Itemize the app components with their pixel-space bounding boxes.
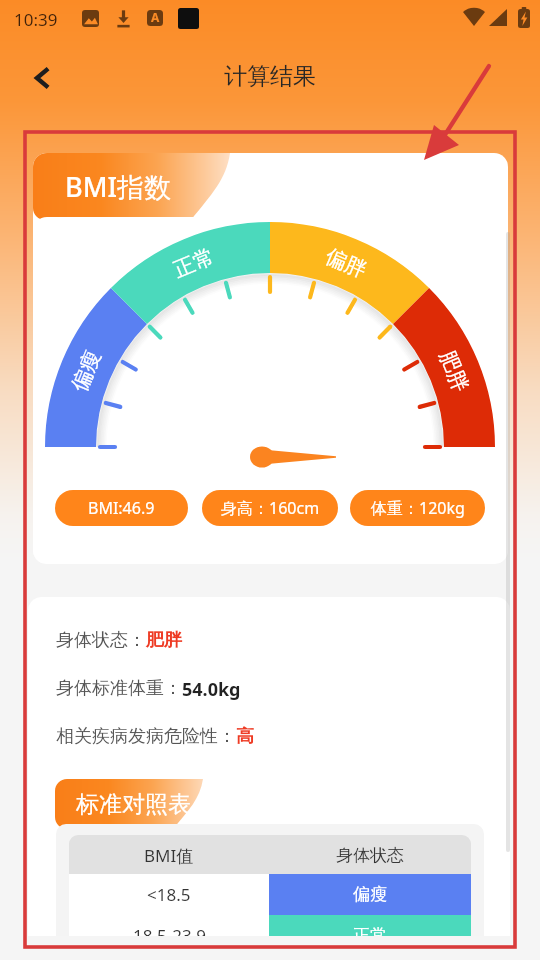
staticText: 高 xyxy=(236,725,254,748)
staticText: 相关疾病发病危险性： xyxy=(56,725,236,748)
button[interactable]: 身高：160cm xyxy=(202,490,338,526)
staticText: BMI:46.9 xyxy=(88,497,155,519)
staticText: 偏瘦 xyxy=(66,347,106,395)
staticText: 肥胖 xyxy=(434,347,474,395)
staticText: <18.5 xyxy=(147,883,191,906)
staticText: 身体状态： xyxy=(56,629,146,652)
staticText: BMI指数 xyxy=(65,168,172,205)
staticText: BMI值 xyxy=(144,844,194,867)
staticText: 标准对照表 xyxy=(76,790,191,819)
button[interactable]: 体重：120kg xyxy=(350,490,485,526)
staticText: 10:39 xyxy=(14,8,58,31)
staticText: A xyxy=(151,9,160,25)
staticText: 肥胖 xyxy=(146,629,182,652)
staticText: 正常 xyxy=(353,925,387,936)
staticText: 偏瘦 xyxy=(353,884,387,905)
staticText: 正常 xyxy=(170,243,218,283)
staticText: 54.0kg xyxy=(182,677,241,702)
staticText: 身体状态 xyxy=(336,845,404,866)
staticText: 身高：160cm xyxy=(221,497,320,519)
staticText: 偏胖 xyxy=(322,243,370,283)
button[interactable]: Back xyxy=(22,58,62,98)
button[interactable]: BMI:46.9 xyxy=(55,490,188,526)
staticText: 计算结果 xyxy=(224,62,316,91)
staticText: 身体标准体重： xyxy=(56,677,182,700)
staticText: 体重：120kg xyxy=(371,497,465,519)
staticText: 18.5-23.9 xyxy=(133,924,206,936)
